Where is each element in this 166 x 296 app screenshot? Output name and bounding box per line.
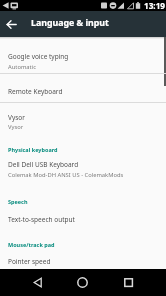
staticText: Pointer speed [8, 257, 51, 266]
staticText: Vysor [8, 123, 24, 131]
staticText: Vysor [8, 113, 25, 122]
button[interactable] [0, 155, 166, 184]
button[interactable] [0, 251, 166, 269]
staticText: Text-to-speech output [8, 215, 75, 224]
staticText: Dell Dell USB Keyboard [8, 160, 79, 169]
staticText: Google voice typing [8, 52, 69, 61]
button[interactable] [0, 208, 166, 232]
staticText: Language & input [31, 17, 109, 29]
staticText: Colemak Mod-DH ANSI US - ColemakMods [8, 171, 124, 179]
button[interactable] [120, 274, 137, 291]
staticText: Remote Keyboard [8, 87, 63, 96]
staticText: Physical keyboard [8, 146, 58, 153]
staticText: Speech [8, 198, 28, 205]
staticText: Automatic [8, 63, 36, 71]
button[interactable] [29, 274, 46, 291]
staticText: 13:19 [144, 0, 166, 11]
button[interactable] [74, 274, 91, 291]
button[interactable] [0, 37, 166, 73]
staticText: Mouse/track pad [8, 241, 55, 248]
button[interactable] [3, 16, 19, 32]
button[interactable] [0, 103, 166, 139]
button[interactable] [0, 74, 166, 102]
